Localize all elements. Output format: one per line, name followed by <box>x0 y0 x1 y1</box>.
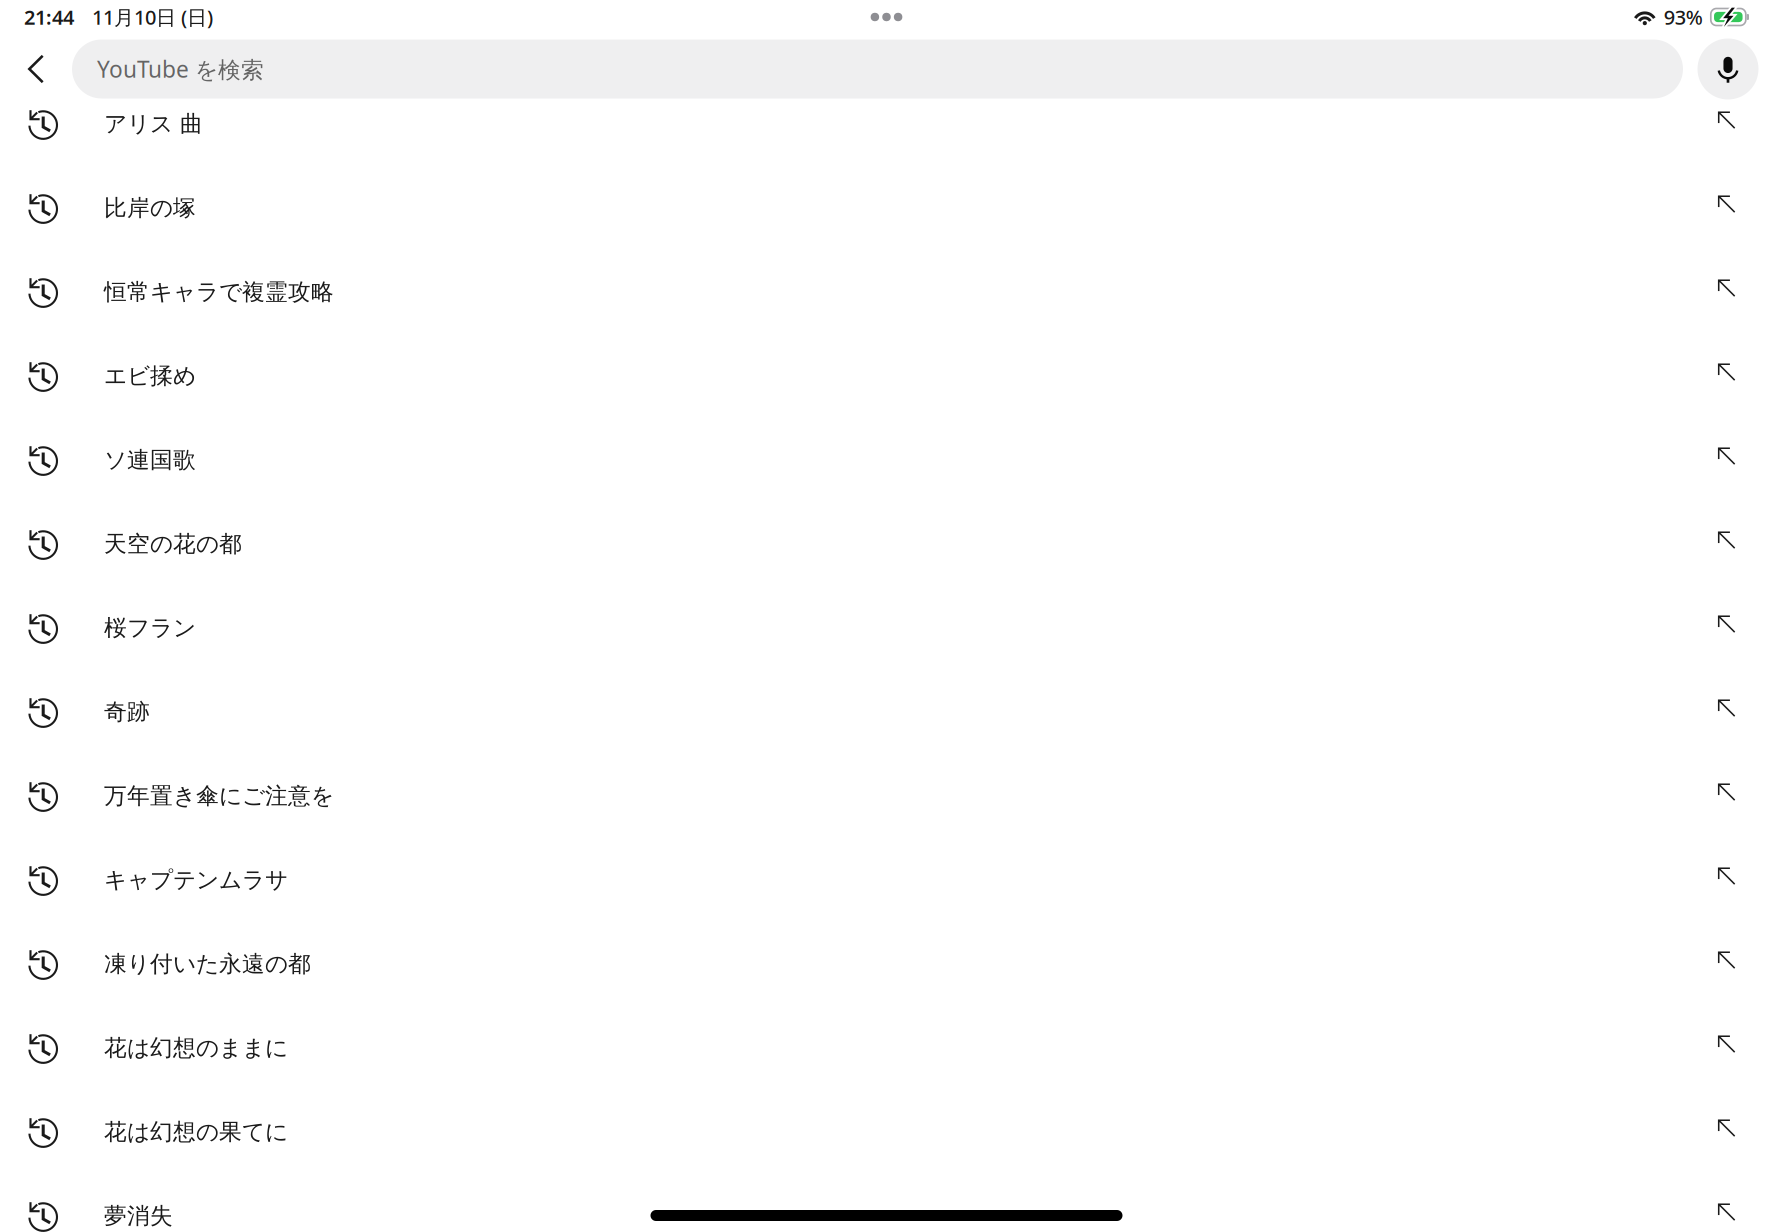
button[interactable]: 花は幻想のままに <box>0 1006 1773 1090</box>
staticText: アリス 曲 <box>104 110 203 138</box>
button[interactable]: エビ揉め <box>0 334 1773 418</box>
button[interactable]: 天空の花の都 <box>0 502 1773 586</box>
staticText: エビ揉め <box>104 362 196 390</box>
staticText: 夢消失 <box>104 1202 173 1230</box>
button[interactable]: YouTube を検索 <box>72 39 1683 98</box>
staticText: 11月10日 (日) <box>92 4 213 30</box>
button[interactable]: 恒常キャラで複霊攻略 <box>0 250 1773 334</box>
button[interactable]: ソ連国歌 <box>0 418 1773 502</box>
staticText: 奇跡 <box>104 698 150 726</box>
staticText: YouTube を検索 <box>97 54 264 84</box>
button[interactable]: キャプテンムラサ <box>0 838 1773 922</box>
button[interactable]: 奇跡 <box>0 670 1773 754</box>
button[interactable]: Back <box>0 38 72 100</box>
staticText: キャプテンムラサ <box>104 866 288 894</box>
button[interactable]: 比岸の塚 <box>0 166 1773 250</box>
staticText: ソ連国歌 <box>104 446 196 474</box>
staticText: 桜フラン <box>104 614 196 642</box>
staticText: 花は幻想のままに <box>104 1034 288 1062</box>
button[interactable]: 桜フラン <box>0 586 1773 670</box>
staticText: 凍り付いた永遠の都 <box>104 950 311 978</box>
staticText: 天空の花の都 <box>104 530 242 558</box>
staticText: 21:44 <box>24 4 74 30</box>
button[interactable]: 夢消失 <box>0 1174 1773 1232</box>
staticText: 恒常キャラで複霊攻略 <box>104 278 334 306</box>
staticText: 花は幻想の果てに <box>104 1118 288 1146</box>
button[interactable]: 凍り付いた永遠の都 <box>0 922 1773 1006</box>
button[interactable]: アリス 曲 <box>0 82 1773 166</box>
button[interactable]: 花は幻想の果てに <box>0 1090 1773 1174</box>
button[interactable]: Voice search <box>1683 38 1773 100</box>
staticText: 万年置き傘にご注意を <box>104 782 334 810</box>
staticText: 93% <box>1664 4 1703 30</box>
staticText: 比岸の塚 <box>104 194 196 222</box>
button[interactable]: 万年置き傘にご注意を <box>0 754 1773 838</box>
